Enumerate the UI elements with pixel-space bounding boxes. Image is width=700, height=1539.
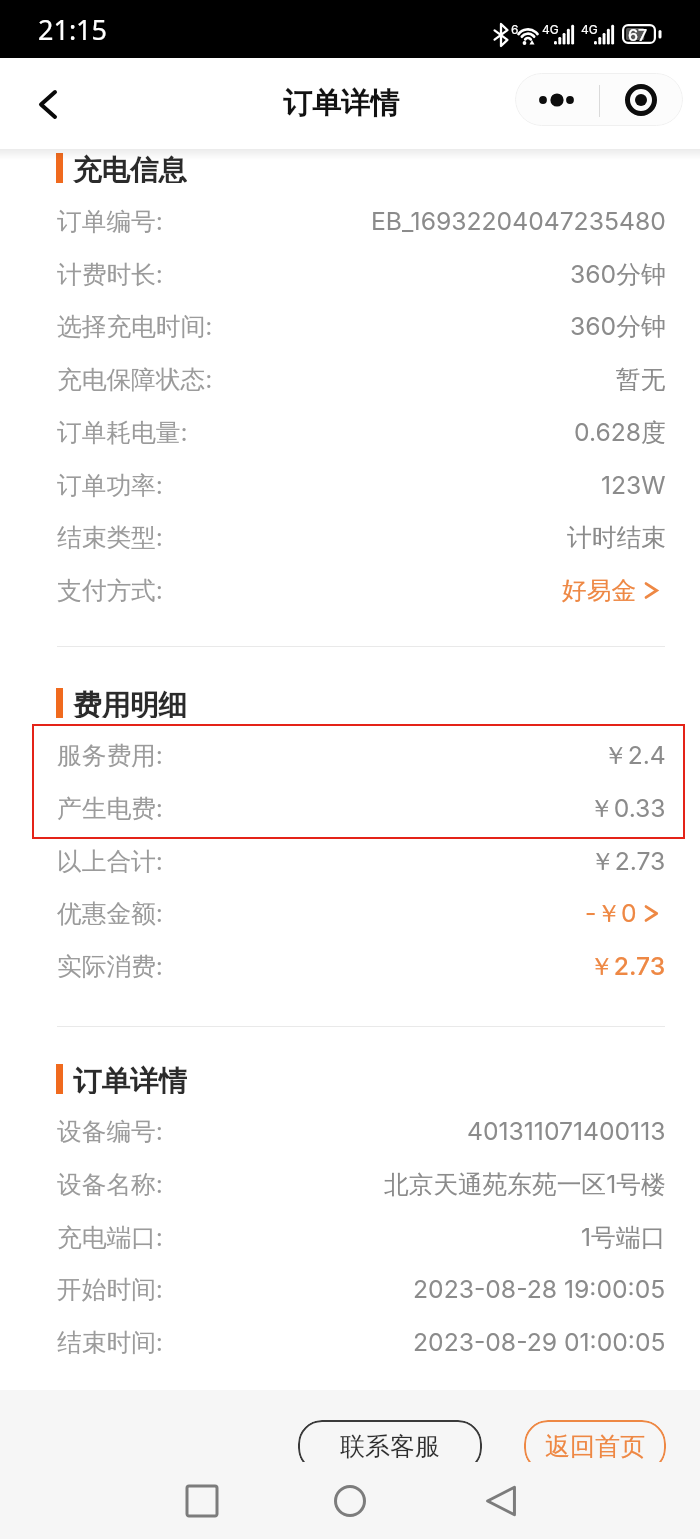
other: Battery 67 percent bbox=[622, 24, 662, 46]
button[interactable]: 选择充电时间: bbox=[0, 300, 700, 352]
button[interactable]: 结束类型: bbox=[0, 511, 700, 563]
staticText: 优惠金额: bbox=[57, 898, 163, 929]
staticText: 0.628度 bbox=[574, 417, 666, 448]
staticText: 结束时间: bbox=[57, 1327, 163, 1358]
staticText: 充电保障状态: bbox=[57, 364, 213, 395]
staticText: 以上合计: bbox=[57, 846, 163, 877]
button[interactable]: 计费时长: bbox=[0, 248, 700, 300]
button[interactable]: 以上合计: bbox=[0, 835, 700, 887]
staticText: 计费时长: bbox=[57, 259, 163, 290]
other: Bluetooth bbox=[494, 24, 508, 46]
staticText: 产生电费: bbox=[57, 793, 163, 824]
button[interactable]: 设备名称: bbox=[0, 1158, 700, 1210]
staticText: 4G bbox=[581, 22, 598, 37]
staticText: 2023-08-28 19:00:05 bbox=[413, 1274, 666, 1304]
staticText: 订单功率: bbox=[57, 470, 163, 501]
staticText: 充电端口: bbox=[57, 1222, 163, 1253]
button[interactable]: Back bbox=[20, 76, 76, 132]
staticText: 360分钟 bbox=[570, 259, 666, 290]
staticText: 2023-08-29 01:00:05 bbox=[413, 1327, 666, 1357]
button[interactable]: 产生电费: bbox=[0, 782, 700, 834]
staticText: -￥0 bbox=[585, 898, 637, 929]
button[interactable]: 订单功率: bbox=[0, 459, 700, 511]
staticText: 好易金 bbox=[562, 575, 637, 606]
staticText: 选择充电时间: bbox=[57, 311, 213, 342]
staticText: 订单详情 bbox=[283, 85, 399, 122]
staticText: 联系客服 bbox=[340, 1431, 440, 1462]
button[interactable]: 实际消费: bbox=[0, 940, 700, 992]
staticText: 返回首页 bbox=[545, 1431, 645, 1462]
staticText: ￥2.73 bbox=[589, 951, 666, 982]
staticText: 暂无 bbox=[616, 364, 666, 395]
button[interactable]: Home bbox=[319, 1470, 381, 1532]
button[interactable]: Close mini program bbox=[599, 73, 683, 126]
button[interactable]: 结束时间: bbox=[0, 1316, 700, 1368]
staticText: 订单编号: bbox=[57, 206, 163, 237]
button[interactable]: 开始时间: bbox=[0, 1263, 700, 1315]
staticText: 360分钟 bbox=[570, 311, 666, 342]
button[interactable]: 优惠金额: bbox=[0, 887, 700, 939]
button[interactable]: 联系客服 bbox=[298, 1420, 482, 1462]
staticText: 6 bbox=[511, 22, 519, 37]
staticText: ￥2.4 bbox=[603, 740, 666, 771]
staticText: 服务费用: bbox=[57, 740, 163, 771]
staticText: 充电信息 bbox=[73, 153, 187, 183]
button[interactable]: 订单编号: bbox=[0, 195, 700, 247]
staticText: EB_16932204047235480 bbox=[371, 206, 666, 236]
staticText: 实际消费: bbox=[57, 951, 163, 982]
button[interactable]: 服务费用: bbox=[0, 729, 700, 781]
staticText: 1号端口 bbox=[581, 1222, 666, 1253]
button[interactable]: Recents bbox=[171, 1470, 233, 1532]
staticText: 北京天通苑东苑一区1号楼 bbox=[384, 1169, 666, 1200]
staticText: 21:15 bbox=[38, 11, 108, 48]
staticText: 支付方式: bbox=[57, 575, 163, 606]
staticText: 67 bbox=[628, 25, 648, 44]
staticText: 开始时间: bbox=[57, 1274, 163, 1305]
staticText: 设备编号: bbox=[57, 1116, 163, 1147]
staticText: 订单详情 bbox=[73, 1064, 187, 1094]
button[interactable]: More bbox=[515, 73, 599, 126]
button[interactable]: 设备编号: bbox=[0, 1105, 700, 1157]
staticText: 订单耗电量: bbox=[57, 417, 188, 448]
button[interactable]: 订单耗电量: bbox=[0, 406, 700, 458]
staticText: 设备名称: bbox=[57, 1169, 163, 1200]
staticText: 123W bbox=[601, 470, 666, 500]
staticText: 401311071400113 bbox=[467, 1116, 666, 1146]
staticText: ￥2.73 bbox=[590, 846, 666, 877]
button[interactable]: 充电保障状态: bbox=[0, 353, 700, 405]
staticText: 4G bbox=[542, 22, 559, 37]
staticText: ￥0.33 bbox=[589, 793, 666, 824]
staticText: 计时结束 bbox=[567, 522, 666, 553]
button[interactable]: 充电端口: bbox=[0, 1211, 700, 1263]
staticText: 费用明细 bbox=[73, 688, 187, 718]
staticText: 结束类型: bbox=[57, 522, 163, 553]
button[interactable]: Back bbox=[470, 1470, 532, 1532]
button[interactable]: 返回首页 bbox=[524, 1420, 666, 1462]
button[interactable]: 支付方式: bbox=[0, 564, 700, 616]
